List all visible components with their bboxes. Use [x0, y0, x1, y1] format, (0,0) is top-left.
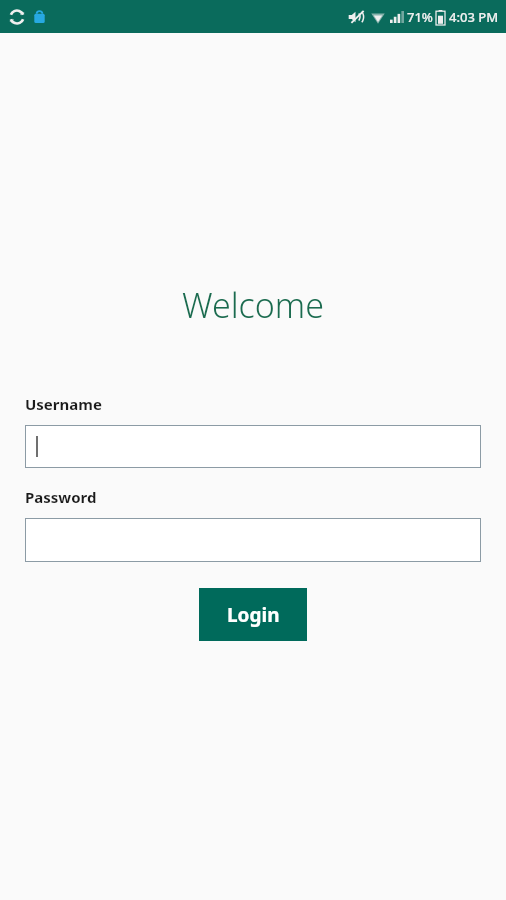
staticText: 71%	[407, 8, 433, 26]
staticText: Login	[227, 602, 280, 628]
button[interactable]: Login	[199, 588, 307, 641]
button[interactable]: Password input	[25, 518, 481, 562]
staticText: 4:03 PM	[449, 8, 499, 26]
staticText: Welcome	[0, 282, 506, 328]
staticText: Username	[25, 394, 102, 414]
staticText: Password	[25, 487, 97, 507]
button[interactable]: Username input	[25, 425, 481, 468]
